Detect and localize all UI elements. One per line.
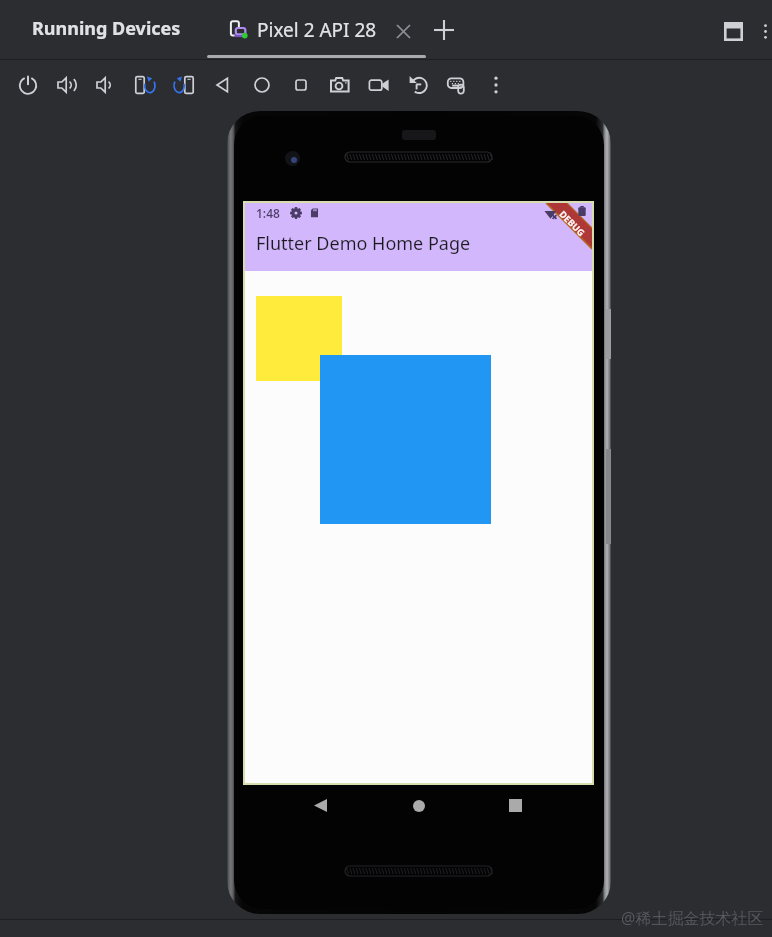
staticText: DEBUG <box>557 208 588 238</box>
button[interactable]: Hardware input <box>440 68 474 102</box>
button[interactable]: Layout options <box>719 17 747 45</box>
button[interactable]: Overview <box>284 68 318 102</box>
button[interactable]: Back <box>303 788 338 823</box>
button[interactable]: Screenshot <box>323 68 357 102</box>
staticText: Flutter Demo Home Page <box>256 231 471 256</box>
button[interactable]: More options <box>754 20 772 42</box>
button[interactable]: Home <box>401 788 436 823</box>
button[interactable]: Add device <box>429 15 459 45</box>
staticText: Pixel 2 API 28 <box>257 17 377 43</box>
button[interactable]: Rotate <box>401 68 435 102</box>
button[interactable]: Record screen <box>362 68 396 102</box>
button[interactable]: Volume up <box>50 68 84 102</box>
button[interactable]: Pixel 2 API 28 <box>207 0 389 59</box>
button[interactable]: More <box>479 68 513 102</box>
button[interactable]: Volume down <box>89 68 123 102</box>
staticText: @稀土掘金技术社区 <box>621 907 764 929</box>
staticText: Running Devices <box>32 16 181 41</box>
button[interactable]: Rotate left <box>128 68 162 102</box>
button[interactable]: Close tab <box>388 16 418 46</box>
button[interactable]: Home <box>245 68 279 102</box>
button[interactable]: Overview <box>498 788 533 823</box>
button[interactable]: Power <box>11 68 45 102</box>
button[interactable]: Rotate right <box>167 68 201 102</box>
button[interactable]: Back <box>206 68 240 102</box>
staticText: 1:48 <box>256 205 280 221</box>
